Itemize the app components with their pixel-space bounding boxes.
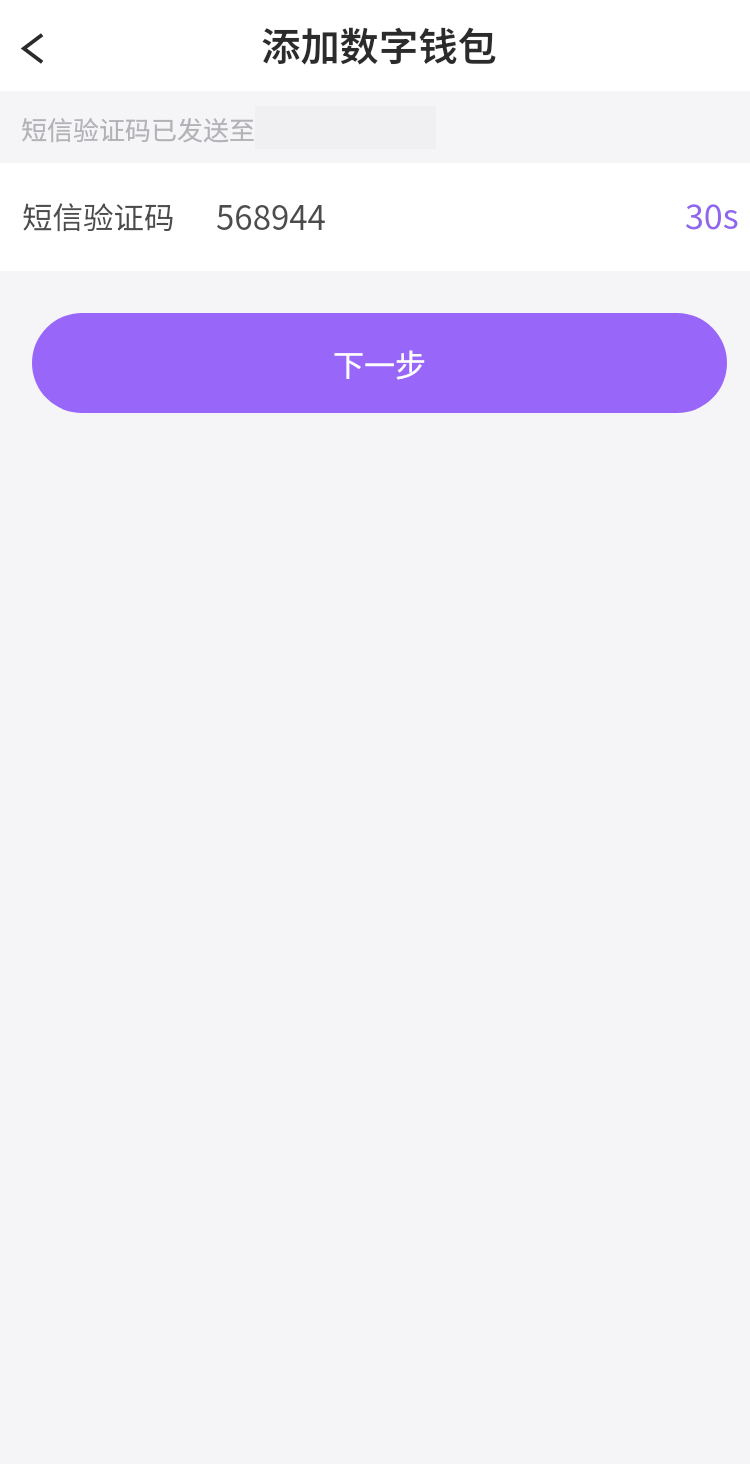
staticText: 短信验证码 bbox=[22, 194, 175, 238]
staticText: 短信验证码已发送至 bbox=[21, 110, 256, 148]
staticText: 添加数字钱包 bbox=[261, 15, 497, 72]
button[interactable]: 下一步 bbox=[32, 313, 727, 413]
button[interactable]: Back bbox=[0, 0, 86, 91]
button[interactable]: 30s bbox=[683, 190, 739, 241]
staticText: 568944 bbox=[216, 192, 326, 240]
staticText: 下一步 bbox=[333, 341, 426, 386]
staticText: 30s bbox=[685, 190, 739, 239]
